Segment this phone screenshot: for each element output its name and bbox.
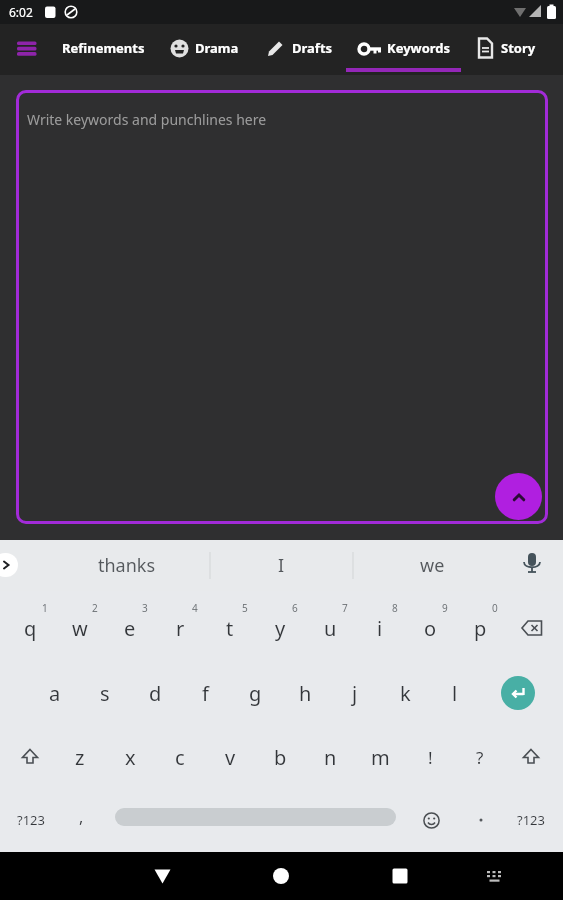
staticText: d (149, 680, 162, 707)
staticText: ?123 (17, 811, 45, 829)
button[interactable] (0, 553, 18, 577)
staticText: c (175, 744, 185, 771)
button[interactable]: t (208, 604, 252, 652)
staticText: y (275, 615, 286, 642)
button[interactable] (495, 473, 542, 520)
button[interactable]: j (333, 669, 377, 717)
button[interactable] (138, 852, 186, 900)
staticText: x (125, 744, 136, 771)
staticText: ? (476, 746, 484, 769)
button[interactable]: Drafts (266, 30, 333, 66)
staticText: , (79, 806, 84, 828)
button[interactable]: ! (408, 733, 452, 781)
staticText: o (424, 615, 437, 642)
button[interactable]: Keywords (358, 30, 451, 66)
button[interactable]: Refinements (58, 30, 148, 66)
staticText: a (49, 680, 61, 707)
staticText: Refinements (62, 39, 145, 57)
button[interactable] (376, 852, 424, 900)
staticText: f (202, 680, 209, 707)
staticText: e (124, 615, 136, 642)
staticText: I (278, 553, 285, 578)
staticText: thanks (98, 553, 156, 578)
button[interactable]: v (208, 733, 252, 781)
button[interactable]: c (158, 733, 202, 781)
staticText: Story (501, 39, 536, 57)
button[interactable] (461, 800, 501, 840)
button[interactable]: ? (458, 733, 502, 781)
button[interactable]: n (308, 733, 352, 781)
button[interactable]: s (83, 669, 127, 717)
button[interactable]: i (358, 604, 402, 652)
staticText: Write keywords and punchlines here (27, 110, 267, 129)
staticText: Drafts (292, 39, 333, 57)
staticText: we (420, 553, 445, 578)
staticText: ?123 (517, 811, 545, 829)
button[interactable]: y (258, 604, 302, 652)
button[interactable]: q (8, 604, 52, 652)
button[interactable]: a (33, 669, 77, 717)
button[interactable]: ?123 (11, 800, 51, 840)
button[interactable]: x (108, 733, 152, 781)
button[interactable] (501, 676, 535, 710)
staticText: 7 (342, 601, 348, 615)
staticText: q (24, 615, 37, 642)
button[interactable]: Write keywords and punchlines here (16, 90, 548, 524)
button[interactable]: h (283, 669, 327, 717)
button[interactable] (12, 38, 44, 62)
staticText: v (225, 744, 236, 771)
staticText: g (249, 680, 262, 707)
staticText: j (352, 680, 358, 707)
button[interactable]: I (216, 540, 346, 591)
staticText: u (324, 615, 337, 642)
button[interactable]: Story (477, 30, 536, 66)
staticText: r (176, 615, 185, 642)
button[interactable]: d (133, 669, 177, 717)
button[interactable]: r (158, 604, 202, 652)
button[interactable] (511, 737, 551, 777)
button[interactable] (115, 808, 396, 826)
button[interactable]: m (358, 733, 402, 781)
button[interactable]: l (433, 669, 477, 717)
staticText: 8 (392, 601, 398, 615)
button[interactable]: Drama (170, 30, 239, 66)
staticText: 1 (42, 601, 48, 615)
button[interactable] (10, 737, 50, 777)
button[interactable]: thanks (62, 540, 192, 591)
button[interactable]: ?123 (511, 800, 551, 840)
button[interactable]: e (108, 604, 152, 652)
button[interactable]: w (58, 604, 102, 652)
button[interactable]: g (233, 669, 277, 717)
button[interactable] (512, 608, 552, 648)
staticText: p (474, 615, 487, 642)
staticText: Keywords (387, 39, 451, 57)
staticText: m (371, 744, 390, 771)
staticText: 0 (492, 601, 498, 615)
staticText: 4 (192, 601, 198, 615)
staticText: l (452, 680, 458, 707)
button[interactable]: o (408, 604, 452, 652)
staticText: z (75, 744, 85, 771)
button[interactable]: k (383, 669, 427, 717)
button[interactable] (411, 800, 451, 840)
staticText: 9 (442, 601, 448, 615)
button[interactable]: b (258, 733, 302, 781)
staticText: 6 (292, 601, 298, 615)
staticText: k (400, 680, 411, 707)
staticText: h (299, 680, 312, 707)
button[interactable] (470, 852, 518, 900)
staticText: w (72, 615, 88, 642)
button[interactable] (257, 852, 305, 900)
staticText: i (377, 615, 383, 642)
button[interactable]: f (183, 669, 227, 717)
staticText: Drama (195, 39, 239, 57)
button[interactable]: we (367, 540, 497, 591)
staticText: 5 (242, 601, 248, 615)
button[interactable]: u (308, 604, 352, 652)
staticText: 2 (92, 601, 98, 615)
staticText: b (274, 744, 287, 771)
button[interactable]: , (59, 793, 103, 841)
button[interactable]: p (458, 604, 502, 652)
staticText: 6:02 (9, 4, 33, 20)
button[interactable]: z (58, 733, 102, 781)
